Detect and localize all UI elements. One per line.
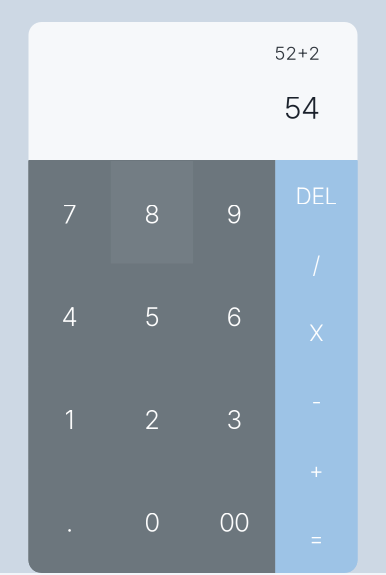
staticText: . bbox=[66, 507, 73, 538]
staticText: / bbox=[312, 251, 320, 278]
staticText: = bbox=[309, 525, 324, 552]
staticText: 00 bbox=[219, 507, 249, 538]
button[interactable]: 7 bbox=[28, 161, 111, 264]
staticText: 7 bbox=[63, 199, 77, 230]
staticText: DEL bbox=[295, 182, 337, 210]
button[interactable]: 3 bbox=[193, 366, 275, 469]
staticText: 5 bbox=[145, 302, 159, 332]
staticText: 3 bbox=[227, 404, 242, 435]
staticText: 4 bbox=[62, 302, 78, 332]
staticText: 8 bbox=[144, 199, 159, 230]
button[interactable]: 4 bbox=[28, 264, 111, 367]
staticText: 9 bbox=[227, 199, 242, 230]
button[interactable]: 9 bbox=[193, 161, 275, 264]
staticText: 6 bbox=[227, 302, 242, 332]
button[interactable]: 6 bbox=[193, 264, 275, 367]
button[interactable]: 0 bbox=[111, 469, 193, 572]
button[interactable]: / bbox=[275, 229, 357, 298]
button[interactable]: 2 bbox=[111, 366, 193, 469]
button[interactable]: X bbox=[275, 298, 357, 366]
staticText: 2 bbox=[144, 404, 159, 435]
button[interactable]: 1 bbox=[28, 366, 111, 469]
button[interactable]: + bbox=[275, 435, 357, 503]
button[interactable]: = bbox=[275, 503, 357, 572]
button[interactable]: - bbox=[275, 366, 357, 435]
staticText: X bbox=[309, 319, 324, 347]
button[interactable]: 5 bbox=[111, 264, 193, 367]
staticText: - bbox=[311, 388, 321, 415]
staticText: + bbox=[309, 456, 324, 484]
button[interactable]: 8 bbox=[111, 161, 193, 264]
staticText: 54 bbox=[284, 90, 319, 126]
button[interactable]: . bbox=[28, 469, 111, 572]
button[interactable]: DEL bbox=[275, 161, 357, 229]
button[interactable]: 00 bbox=[193, 469, 275, 572]
staticText: 0 bbox=[144, 507, 159, 538]
staticText: 1 bbox=[65, 404, 75, 435]
staticText: 52+2 bbox=[274, 42, 319, 64]
